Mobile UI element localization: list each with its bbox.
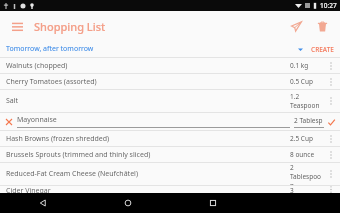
staticText: Shopping List — [34, 19, 106, 34]
button[interactable]: More options for Reduced-Fat Cream Chees… — [324, 167, 338, 181]
staticText: 3 — [290, 186, 294, 193]
staticText: Walnuts (chopped) — [6, 61, 290, 71]
staticText: 2 — [290, 163, 294, 172]
staticText: 1.2 — [290, 92, 300, 101]
staticText: 2.5 Cup — [290, 134, 313, 143]
staticText: Cherry Tomatoes (assorted) — [6, 77, 290, 87]
staticText: n — [290, 181, 295, 185]
staticText: 0.5 Cup — [290, 77, 313, 86]
staticText: CREATE — [311, 45, 334, 54]
button[interactable]: Reduced-Fat Cream Cheese (Neufchâtel) — [0, 163, 340, 185]
button[interactable]: Salt — [0, 90, 340, 112]
staticText: Reduced-Fat Cream Cheese (Neufchâtel) — [6, 169, 290, 179]
button[interactable]: More options for Cider Vinegar — [324, 186, 338, 193]
button[interactable]: Open navigation menu — [6, 15, 28, 37]
button[interactable]: Walnuts (chopped) — [0, 58, 340, 73]
button[interactable]: More options for Salt — [324, 94, 338, 108]
button[interactable]: Cancel edit — [3, 116, 15, 128]
button[interactable]: Send list — [284, 14, 308, 38]
staticText: Salt — [6, 96, 290, 106]
button[interactable]: More options for Brussels Sprouts (trimm… — [324, 148, 338, 162]
button[interactable]: More options for Cherry Tomatoes (assort… — [324, 75, 338, 89]
staticText: 2 Tablesp — [294, 116, 323, 125]
staticText: Mayonnaise — [17, 115, 57, 125]
button[interactable]: More options for Walnuts (chopped) — [324, 59, 338, 73]
staticText: 0.1 kg — [290, 61, 309, 70]
button[interactable]: Recent apps — [170, 193, 255, 213]
button[interactable]: Confirm edit — [324, 115, 338, 129]
staticText: 8 ounce — [290, 150, 315, 159]
staticText: 10:27 — [320, 1, 337, 10]
staticText: Tablespoo — [290, 172, 322, 181]
button[interactable]: Delete list — [310, 14, 334, 38]
staticText: Teaspoon — [290, 101, 320, 110]
button[interactable]: Cider Vinegar — [0, 186, 340, 193]
button[interactable]: Cherry Tomatoes (assorted) — [0, 74, 340, 89]
button[interactable]: Back — [0, 193, 85, 213]
button[interactable]: Change filter — [293, 42, 307, 56]
button[interactable]: Tomorrow, after tomorrow — [6, 41, 293, 57]
staticText: Hash Browns (frozen shredded) — [6, 134, 290, 144]
button[interactable]: Brussels Sprouts (trimmed and thinly sli… — [0, 147, 340, 162]
button[interactable]: Home — [85, 193, 170, 213]
staticText: Cider Vinegar — [6, 186, 290, 193]
button[interactable]: CREATE — [311, 41, 334, 57]
button[interactable]: More options for Hash Browns (frozen shr… — [324, 132, 338, 146]
button[interactable]: Cancel edit — [0, 113, 340, 130]
staticText: Tomorrow, after tomorrow — [6, 44, 94, 54]
button[interactable]: Hash Browns (frozen shredded) — [0, 131, 340, 146]
staticText: Brussels Sprouts (trimmed and thinly sli… — [6, 150, 290, 160]
